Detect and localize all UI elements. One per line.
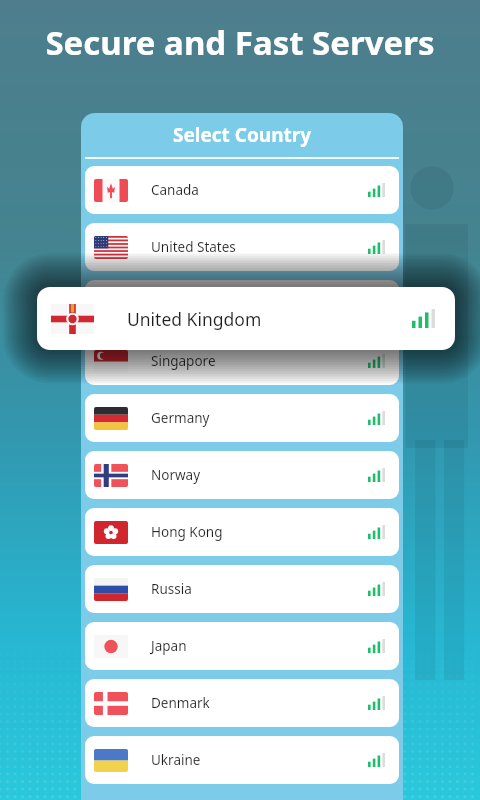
button[interactable]: Norway <box>85 451 399 499</box>
button[interactable]: Canada <box>85 166 399 214</box>
staticText: Singapore <box>151 352 216 370</box>
staticText: Select Country <box>85 122 399 148</box>
button[interactable]: Singapore <box>85 337 399 385</box>
staticText: Canada <box>151 181 199 199</box>
button[interactable]: Germany <box>85 394 399 442</box>
staticText: Japan <box>151 637 187 655</box>
staticText: United Kingdom <box>151 295 255 313</box>
button[interactable]: Hong Kong <box>85 508 399 556</box>
button[interactable]: United Kingdom <box>85 280 399 328</box>
staticText: United Kingdom <box>127 307 262 331</box>
staticText: Denmark <box>151 694 210 712</box>
staticText: Norway <box>151 466 201 484</box>
button[interactable]: United States <box>85 223 399 271</box>
staticText: Germany <box>151 409 210 427</box>
staticText: Hong Kong <box>151 523 223 541</box>
staticText: United States <box>151 238 236 256</box>
staticText: Russia <box>151 580 192 598</box>
button[interactable]: Japan <box>85 622 399 670</box>
button[interactable]: United Kingdom <box>37 287 455 350</box>
staticText: Ukraine <box>151 751 201 769</box>
button[interactable]: Ukraine <box>85 736 399 784</box>
staticText: Secure and Fast Servers <box>0 20 480 65</box>
button[interactable]: Russia <box>85 565 399 613</box>
button[interactable]: Denmark <box>85 679 399 727</box>
